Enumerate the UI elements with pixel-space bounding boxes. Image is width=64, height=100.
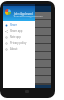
staticText: Share <box>10 23 17 27</box>
staticText: john.appleseed@gmail.com <box>14 15 43 18</box>
button[interactable] <box>3 44 51 52</box>
other: Privacy policy <box>5 42 8 45</box>
other: Share <box>5 24 8 27</box>
button[interactable]: Rate app <box>3 34 35 40</box>
staticText: Share app <box>10 29 23 33</box>
button[interactable] <box>3 60 51 68</box>
button[interactable] <box>3 84 51 85</box>
other: Share app <box>5 30 8 33</box>
staticText: About <box>10 47 18 51</box>
button[interactable] <box>3 52 51 60</box>
button[interactable] <box>3 28 51 36</box>
button[interactable] <box>3 68 51 76</box>
other: Rate app <box>5 36 8 39</box>
button[interactable]: About <box>3 46 35 52</box>
button[interactable]: Share app <box>3 28 35 34</box>
staticText: Privacy policy <box>10 41 27 45</box>
button[interactable]: Share <box>3 22 35 28</box>
button[interactable] <box>3 20 51 28</box>
button[interactable] <box>3 12 51 20</box>
button[interactable] <box>3 76 51 84</box>
other: About <box>5 48 8 51</box>
staticText: Rate app <box>10 35 21 39</box>
button[interactable]: Privacy policy <box>3 40 35 46</box>
button[interactable] <box>3 36 51 44</box>
staticText: John Appleseed <box>14 12 33 16</box>
